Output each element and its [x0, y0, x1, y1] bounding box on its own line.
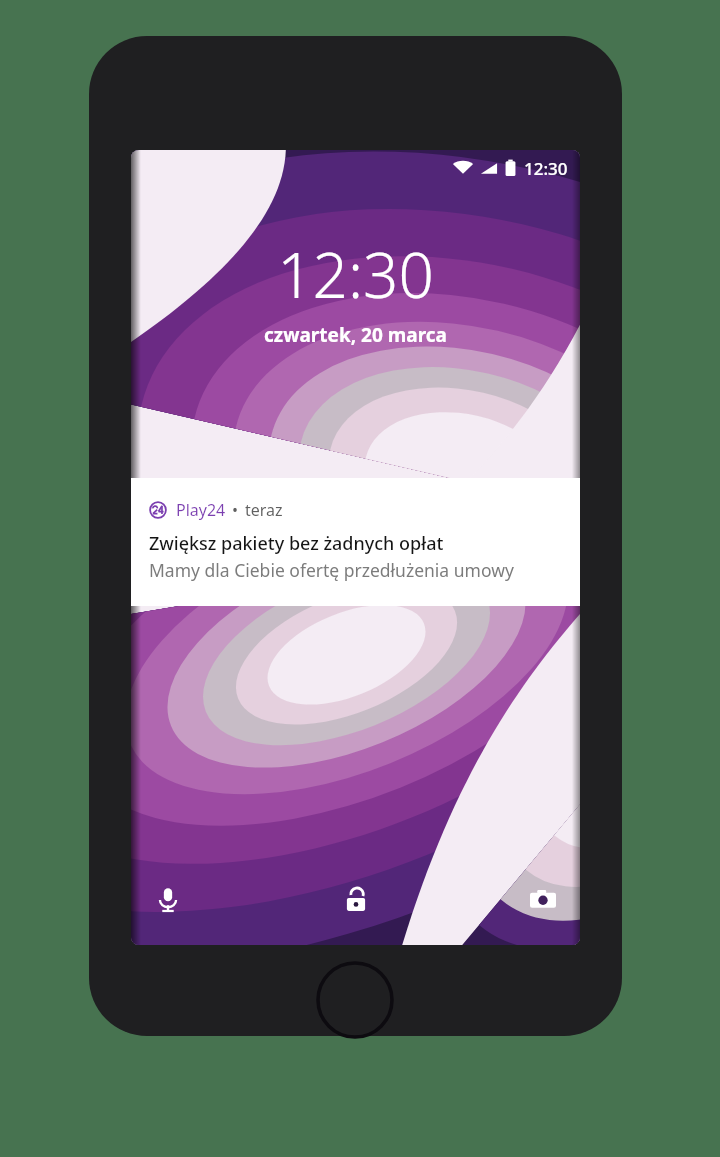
button[interactable]: Play24 [131, 478, 580, 606]
staticText: Mamy dla Ciebie ofertę przedłużenia umow… [149, 558, 514, 582]
button[interactable]: Voice assistant [145, 877, 191, 923]
button[interactable]: Unlock [333, 877, 379, 923]
staticText: Zwiększ pakiety bez żadnych opłat [149, 531, 444, 556]
staticText: 12:30 [277, 232, 434, 316]
staticText: czwartek, 20 marca [264, 322, 447, 348]
staticText: 12:30 [524, 157, 568, 180]
button[interactable]: Camera [520, 877, 566, 923]
staticText: teraz [245, 499, 283, 521]
staticText: • [232, 499, 239, 521]
staticText: Play24 [176, 499, 226, 521]
